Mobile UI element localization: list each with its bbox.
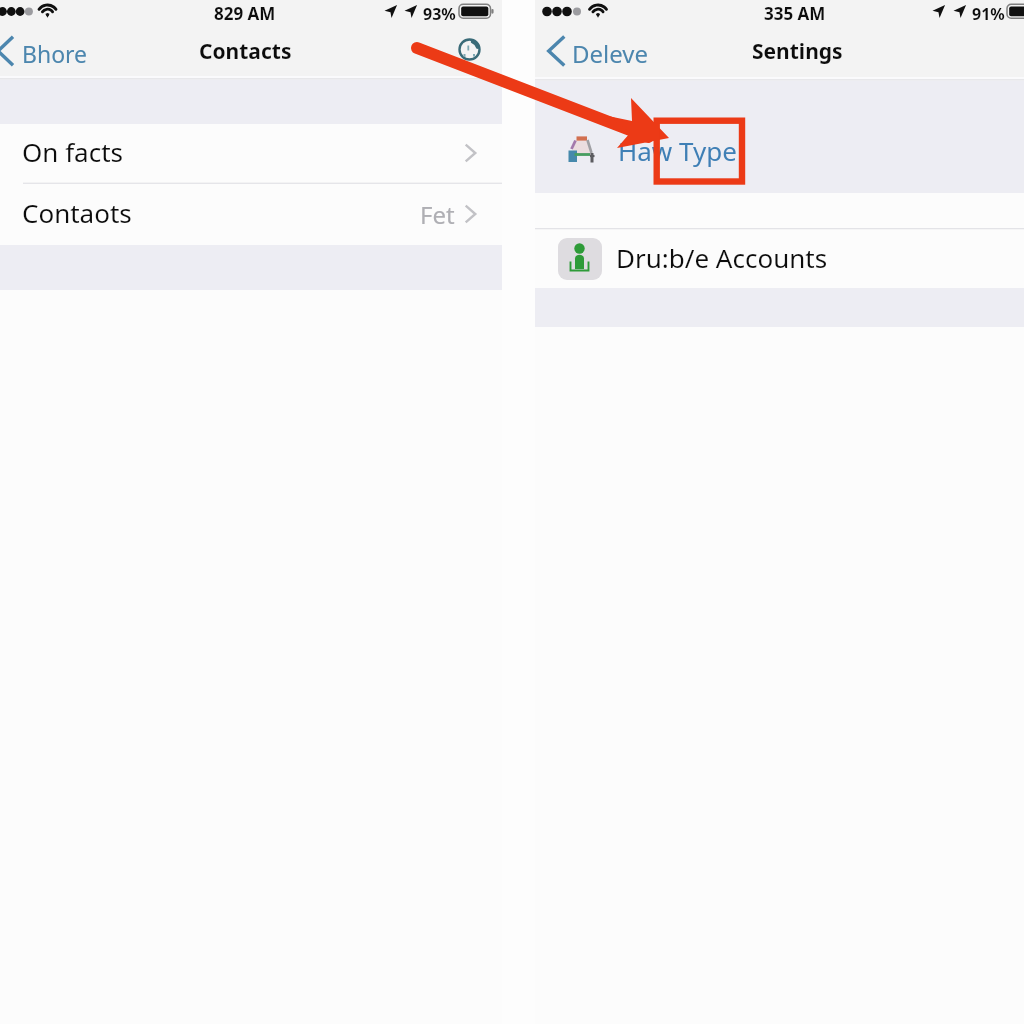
button[interactable]: Back to Deleve — [547, 33, 647, 78]
staticText: Contacts — [199, 37, 292, 66]
staticText: Bhore — [22, 38, 88, 69]
staticText: Haw Type — [618, 133, 737, 168]
staticText: Deleve — [572, 37, 649, 70]
staticText: Contaots — [22, 195, 132, 230]
staticText: 91% — [972, 3, 1005, 25]
staticText: 335 AM — [764, 2, 826, 25]
staticText: On facts — [22, 134, 123, 169]
button[interactable]: On facts — [0, 124, 502, 183]
button[interactable]: Contaots — [0, 184, 502, 245]
staticText: 93% — [423, 3, 456, 25]
staticText: 829 AM — [214, 2, 276, 25]
button[interactable]: Dru:b/e Accounts — [535, 228, 1024, 288]
button[interactable]: Globe — [452, 32, 488, 68]
button[interactable]: Haw Type — [535, 122, 1024, 180]
staticText: Sentings — [752, 37, 843, 66]
staticText: Dru:b/e Accounts — [616, 240, 828, 275]
staticText: Fet — [420, 198, 455, 231]
button[interactable]: Back to Bhore — [0, 33, 92, 78]
